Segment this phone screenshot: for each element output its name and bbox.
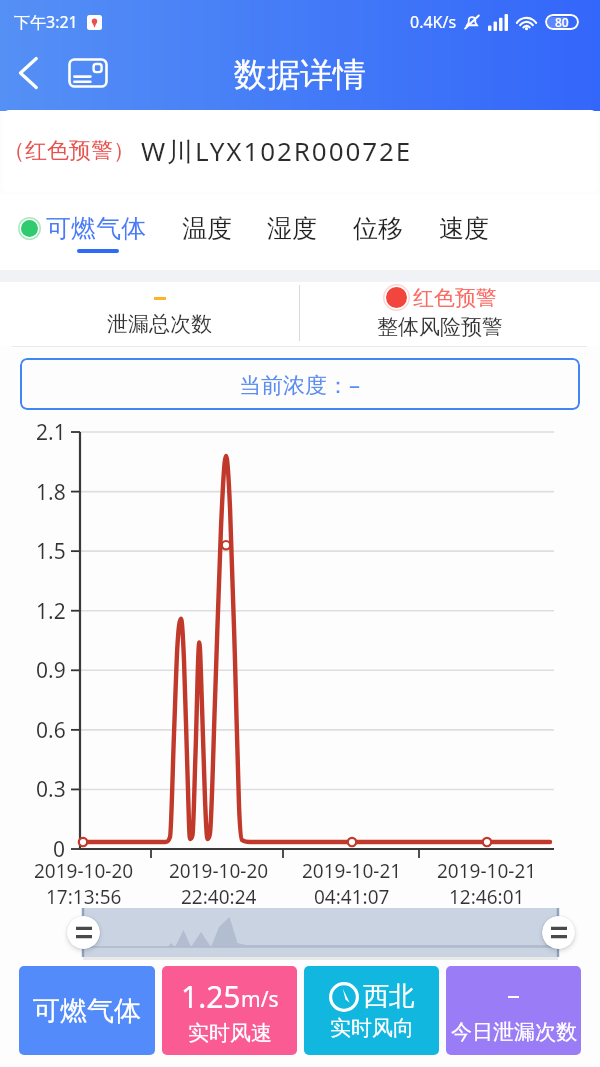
button[interactable]: 湿度 [258,205,326,251]
staticText: 位移 [353,213,403,244]
staticText: – [507,976,521,1011]
staticText: 2019-10-21 [437,858,537,884]
staticText: 0.6 [36,716,66,744]
staticText: 2.1 [36,418,66,446]
staticText: m/s [241,985,279,1014]
button[interactable]: 可燃气体 [19,966,155,1055]
staticText: 温度 [182,213,232,244]
staticText: 泄漏总次数 [107,311,212,337]
button[interactable]: Device card [64,49,112,97]
staticText: 0.4K/s [410,11,457,33]
staticText: 当前浓度：– [239,369,361,399]
button[interactable]: 当前浓度：– [20,358,580,410]
button[interactable]: 速度 [430,205,498,251]
button[interactable]: Back [4,49,52,97]
staticText: 可燃气体 [46,213,146,244]
button[interactable]: 1.25 [162,966,297,1055]
button[interactable]: 可燃气体 [18,205,146,251]
staticText: 红色预警 [413,285,497,311]
staticText: 速度 [439,213,489,244]
staticText: W川LYX102R00072E [141,133,413,169]
staticText: 1.2 [36,597,66,625]
staticText: 12:46:01 [449,884,525,910]
staticText: 1.25 [181,976,241,1017]
staticText: 2019-10-21 [302,858,402,884]
staticText: 17:13:56 [46,884,122,910]
staticText: 今日泄漏次数 [451,1019,577,1045]
staticText: 22:40:24 [181,884,257,910]
staticText: 数据详情 [234,54,366,96]
staticText: 湿度 [267,213,317,244]
staticText: 2019-10-20 [169,858,269,884]
staticText: 0.3 [36,775,66,803]
staticText: 0.9 [36,656,66,684]
staticText: 2019-10-20 [34,858,134,884]
button[interactable]: 红色预警 [300,284,580,344]
button[interactable]: 西北 [304,966,439,1055]
button[interactable]: 泄漏总次数 [20,286,299,346]
staticText: 可燃气体 [33,994,141,1028]
button[interactable]: Range handle [67,916,100,949]
staticText: 西北 [363,980,415,1013]
staticText: 1.8 [36,478,66,506]
staticText: 80 [555,14,569,30]
staticText: （红色预警） [3,137,135,165]
button[interactable]: 位移 [344,205,412,251]
staticText: 1.5 [36,537,66,565]
staticText: 04:41:07 [314,884,390,910]
button[interactable]: 温度 [173,205,241,251]
staticText: 整体风险预警 [377,314,503,340]
button[interactable]: – [446,966,581,1055]
staticText: 实时风向 [330,1015,414,1041]
button[interactable]: （红色预警） [3,110,597,192]
button[interactable]: Range handle [542,916,575,949]
staticText: 下午3:21 [14,11,78,33]
staticText: 0 [53,835,66,863]
staticText: 实时风速 [188,1020,272,1046]
